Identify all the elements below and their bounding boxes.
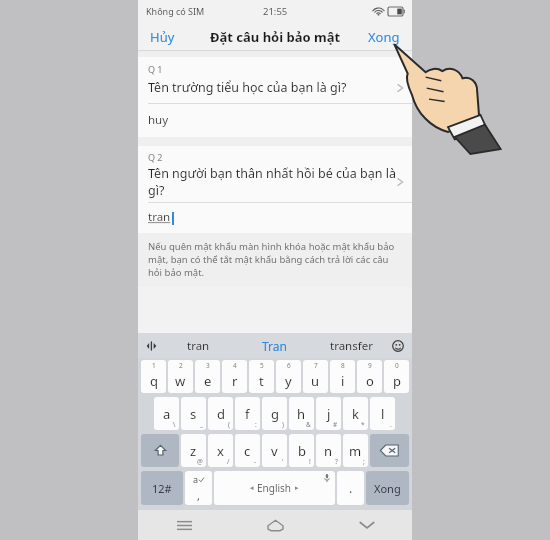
staticText: m: [349, 442, 362, 460]
staticText: n: [324, 442, 333, 460]
staticText: English: [257, 481, 292, 495]
button[interactable]: d: [208, 397, 233, 430]
staticText: (: [228, 420, 230, 429]
button[interactable]: huy: [138, 104, 412, 137]
button[interactable]: Tên người bạn thân nhất hồi bé của bạn l…: [138, 164, 412, 202]
button[interactable]: Tên trường tiểu học của bạn là gì?: [138, 77, 412, 103]
button[interactable]: h: [289, 397, 314, 430]
button[interactable]: 12#: [141, 471, 183, 505]
button[interactable]: m: [343, 434, 368, 467]
button[interactable]: y: [276, 360, 301, 393]
button[interactable]: z: [181, 434, 206, 467]
button[interactable]: s: [181, 397, 206, 430]
button[interactable]: Move cursor: [144, 338, 160, 354]
button[interactable]: o: [357, 360, 382, 393]
button[interactable]: transfer: [313, 338, 390, 354]
staticText: @: [197, 457, 203, 466]
staticText: &: [306, 420, 311, 429]
staticText: a: [163, 405, 171, 423]
staticText: ?: [335, 457, 338, 466]
button[interactable]: b: [289, 434, 314, 467]
staticText: z: [190, 442, 197, 460]
button[interactable]: Home: [230, 510, 321, 540]
staticText: tran: [148, 209, 171, 225]
staticText: 6: [287, 361, 291, 370]
button[interactable]: Emoji: [390, 338, 406, 354]
button[interactable]: k: [343, 397, 368, 430]
button[interactable]: v: [262, 434, 287, 467]
staticText: 7: [314, 361, 318, 370]
staticText: #: [333, 420, 338, 429]
button[interactable]: Backspace: [370, 434, 409, 467]
staticText: d: [217, 405, 225, 423]
staticText: i: [341, 372, 345, 390]
staticText: t: [259, 372, 264, 390]
button[interactable]: i: [330, 360, 355, 393]
staticText: h: [297, 405, 306, 423]
staticText: 8: [341, 361, 345, 370]
staticText: _: [200, 420, 203, 429]
button[interactable]: f: [235, 397, 260, 430]
staticText: a: [193, 473, 199, 485]
staticText: .: [349, 480, 353, 496]
button[interactable]: Xong: [356, 24, 412, 50]
staticText: b: [298, 442, 306, 460]
staticText: g: [271, 405, 279, 423]
button[interactable]: Space: [214, 471, 335, 505]
staticText: .: [390, 420, 392, 429]
button[interactable]: Menu: [138, 510, 230, 540]
button[interactable]: l: [370, 397, 395, 430]
staticText: transfer: [330, 338, 373, 354]
staticText: 0: [395, 361, 399, 370]
button[interactable]: n: [316, 434, 341, 467]
staticText: tran: [187, 338, 210, 354]
staticText: ): [282, 420, 284, 429]
staticText: Tran: [262, 338, 287, 354]
staticText: Xong: [368, 28, 400, 46]
button[interactable]: e: [195, 360, 220, 393]
staticText: 2: [179, 361, 183, 370]
button[interactable]: r: [222, 360, 247, 393]
button[interactable]: t: [249, 360, 274, 393]
staticText: :: [255, 420, 257, 429]
staticText: Q 1: [148, 63, 163, 75]
staticText: \: [173, 420, 176, 429]
button[interactable]: u: [303, 360, 328, 393]
button[interactable]: .: [337, 471, 364, 505]
staticText: k: [352, 405, 359, 423]
staticText: ◂: [250, 484, 254, 492]
staticText: ': [282, 457, 284, 466]
staticText: q: [150, 372, 158, 390]
staticText: 21:55: [263, 5, 288, 18]
button[interactable]: w: [168, 360, 193, 393]
button[interactable]: p: [384, 360, 409, 393]
button[interactable]: Tran: [236, 338, 313, 354]
button[interactable]: x: [208, 434, 233, 467]
staticText: Đặt câu hỏi bảo mật: [210, 28, 341, 46]
button[interactable]: Back: [321, 510, 412, 540]
button[interactable]: tran: [138, 203, 412, 233]
button[interactable]: c: [235, 434, 260, 467]
staticText: Nếu quên mật khẩu màn hình khóa hoặc mật…: [148, 240, 402, 279]
button[interactable]: Shift: [141, 434, 179, 467]
staticText: 1: [152, 361, 156, 370]
staticText: /: [227, 457, 230, 466]
button[interactable]: Xong: [366, 471, 409, 505]
staticText: ,: [197, 488, 200, 503]
staticText: u: [311, 372, 320, 390]
staticText: j: [327, 405, 331, 423]
button[interactable]: Language and comma: [185, 471, 212, 505]
staticText: w: [175, 372, 186, 390]
staticText: f: [245, 405, 250, 423]
button[interactable]: tran: [160, 338, 236, 354]
button[interactable]: Hủy: [138, 24, 187, 50]
staticText: 9: [368, 361, 372, 370]
staticText: 5: [260, 361, 264, 370]
button[interactable]: a: [154, 397, 179, 430]
button[interactable]: g: [262, 397, 287, 430]
staticText: o: [366, 372, 374, 390]
button[interactable]: q: [141, 360, 166, 393]
button[interactable]: j: [316, 397, 341, 430]
staticText: c: [244, 442, 251, 460]
staticText: r: [232, 372, 238, 390]
